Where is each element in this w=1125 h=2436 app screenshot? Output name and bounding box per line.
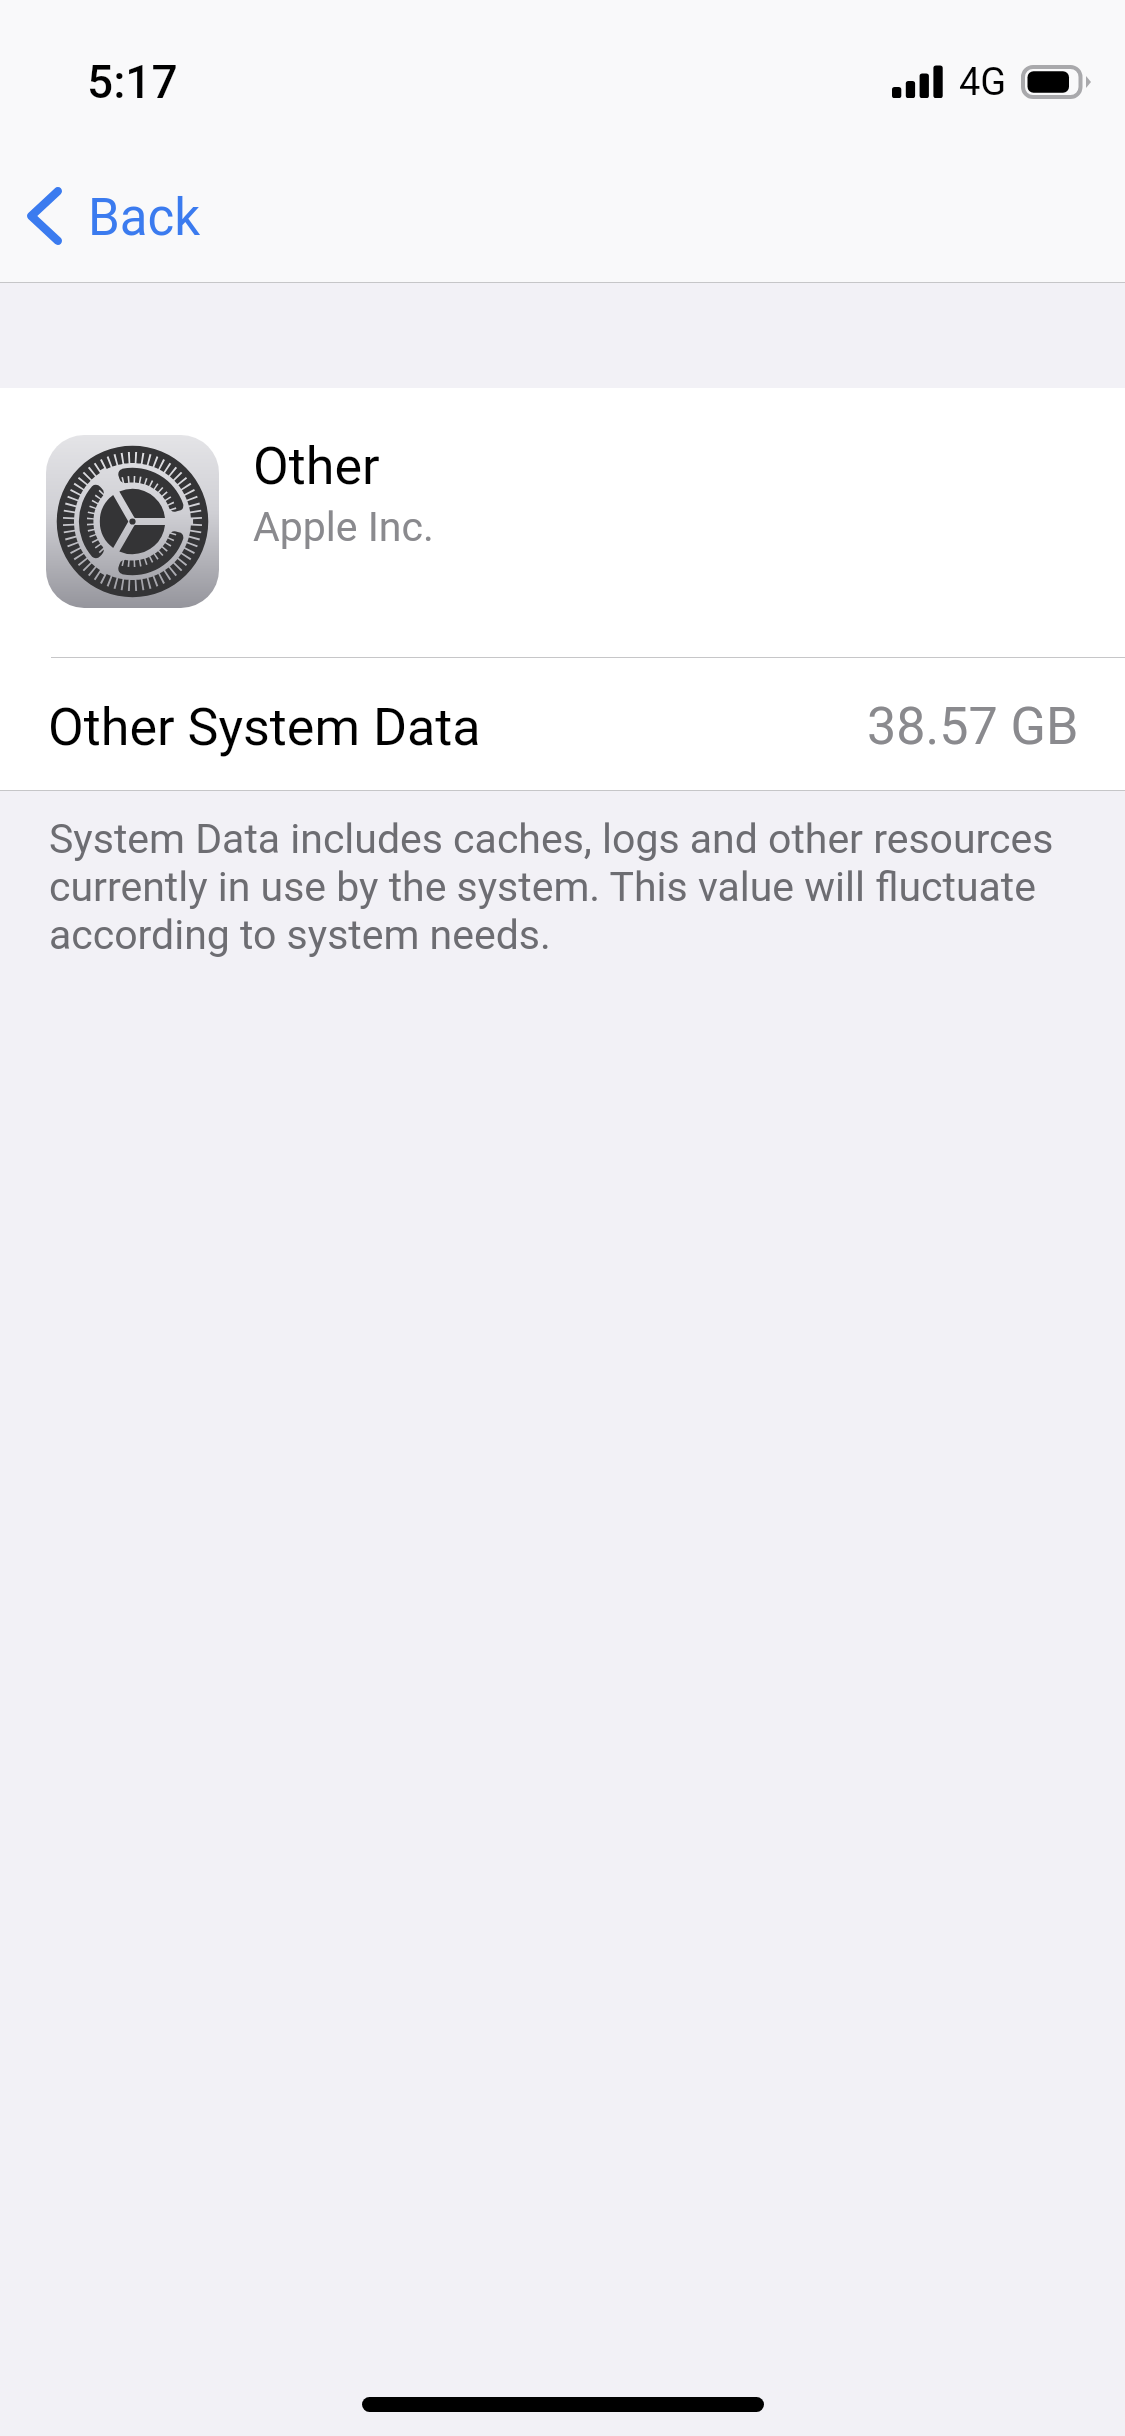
button[interactable]: Other (0, 388, 1125, 657)
staticText: 4G (959, 60, 1007, 105)
staticText: Apple Inc. (253, 503, 434, 551)
staticText: Other System Data (48, 697, 481, 758)
staticText: 5:17 (87, 55, 178, 109)
button[interactable]: Other System Data (0, 658, 1125, 790)
staticText: Back (88, 188, 201, 248)
staticText: Other (253, 436, 380, 497)
staticText: System Data includes caches, logs and ot… (49, 815, 1064, 959)
staticText: 38.57 GB (867, 696, 1079, 757)
button[interactable]: Back (8, 166, 220, 266)
